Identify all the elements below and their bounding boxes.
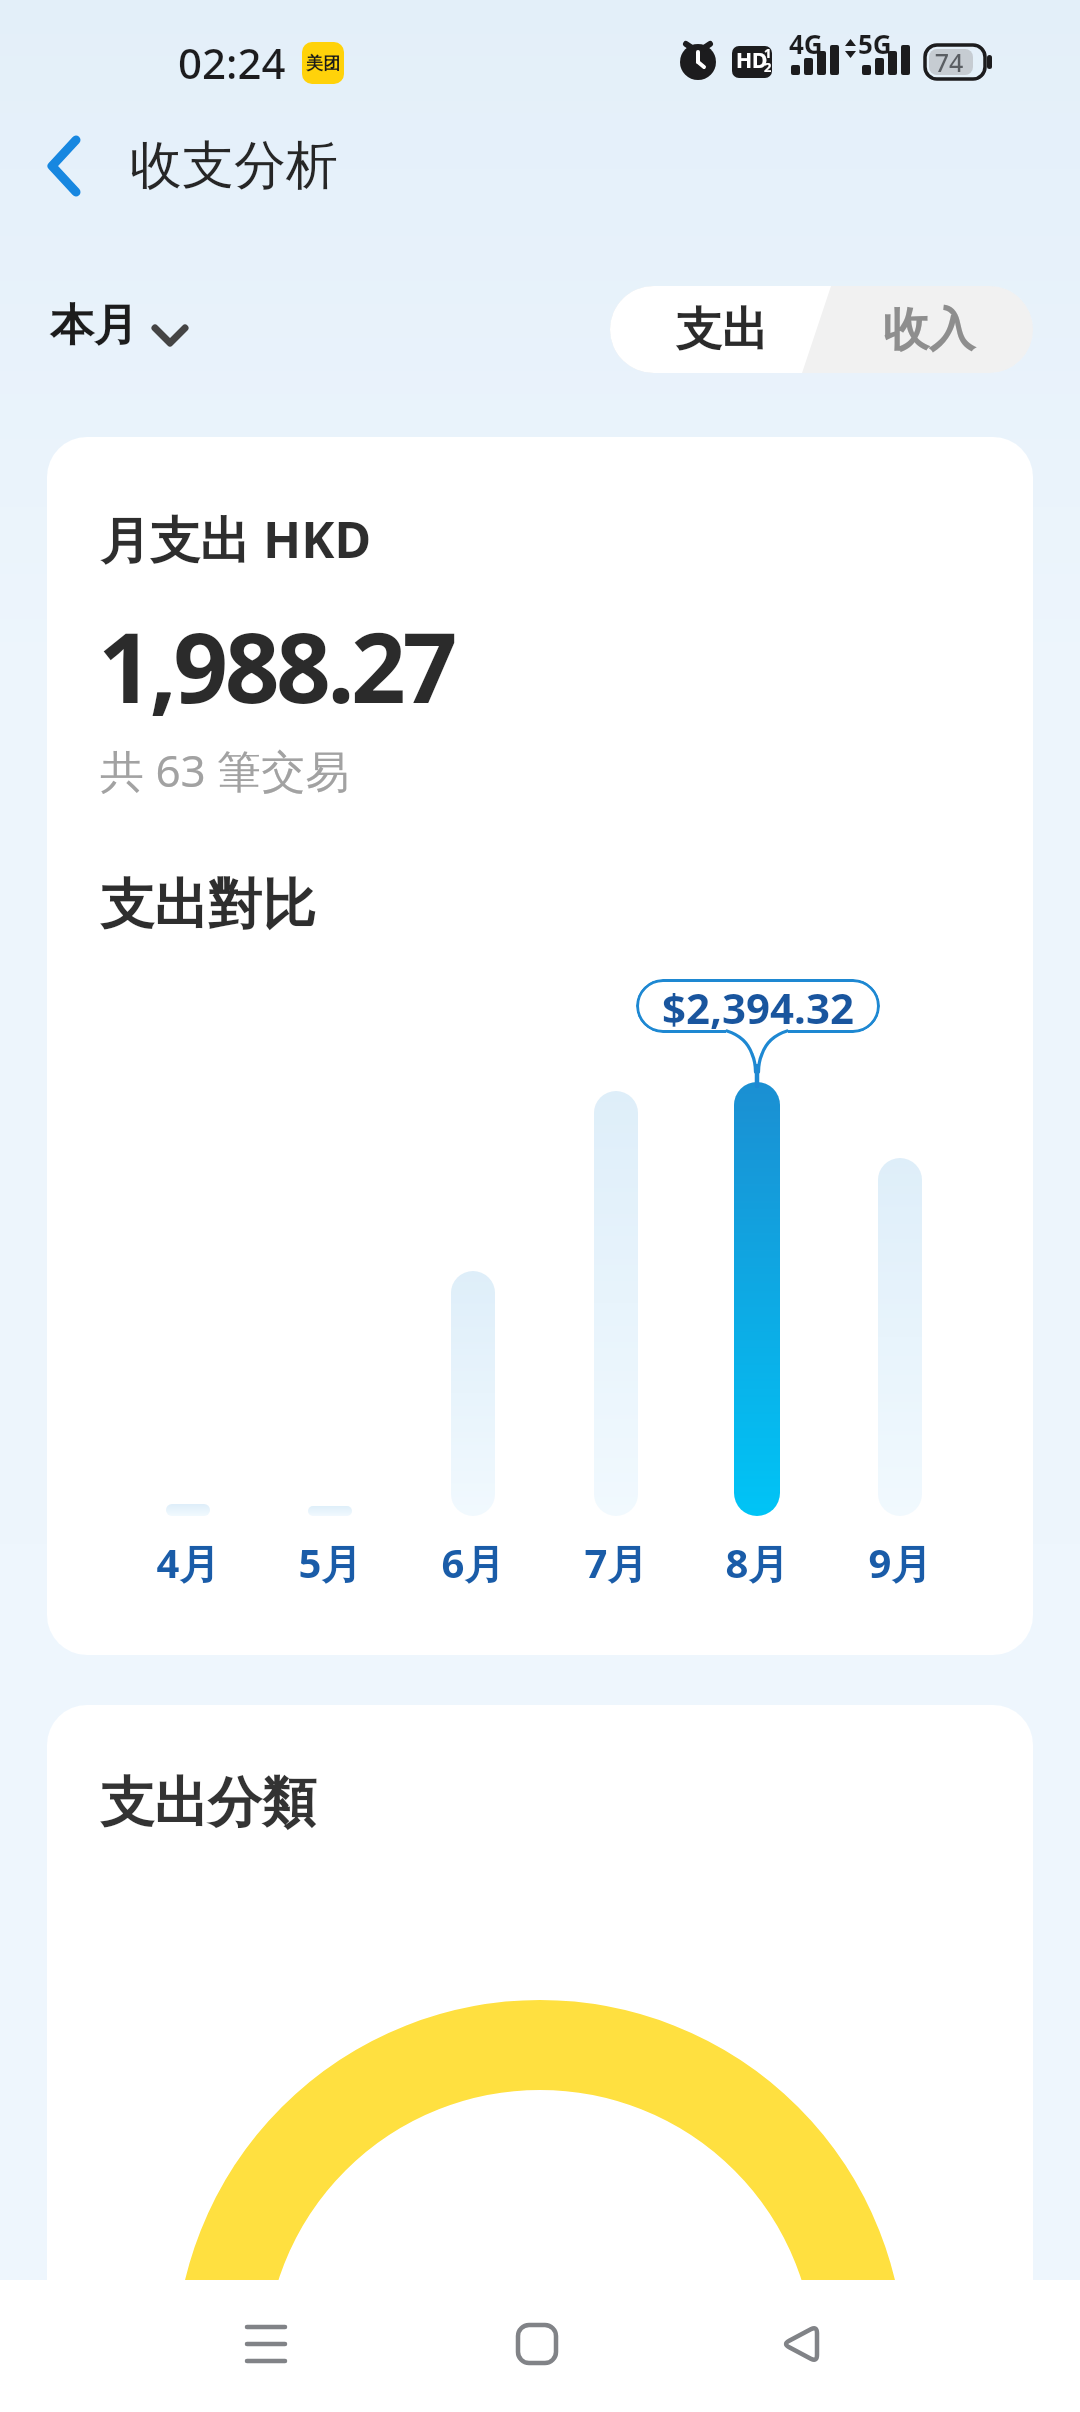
button[interactable] bbox=[230, 2308, 302, 2380]
staticText: 月支出 HKD bbox=[100, 505, 372, 573]
staticText: 02:24 bbox=[178, 34, 286, 91]
staticText: 8月 bbox=[697, 1535, 817, 1590]
staticText: HD bbox=[736, 46, 768, 75]
staticText: 支出 bbox=[676, 301, 768, 359]
staticText: 2 bbox=[764, 58, 772, 76]
staticText: 1,988.27 bbox=[98, 600, 454, 731]
staticText: 共 63 筆交易 bbox=[100, 740, 350, 800]
button[interactable]: 收入 bbox=[840, 286, 1033, 373]
button[interactable] bbox=[765, 2308, 837, 2380]
staticText: 4月 bbox=[128, 1535, 248, 1590]
staticText: 收入 bbox=[883, 301, 975, 359]
staticText: 1 bbox=[764, 44, 772, 62]
staticText: 5月 bbox=[270, 1535, 390, 1590]
staticText: 7月 bbox=[556, 1535, 676, 1590]
staticText: 支出對比 bbox=[100, 871, 316, 939]
staticText: 本月 bbox=[50, 298, 138, 353]
staticText: 74 bbox=[925, 45, 973, 79]
button[interactable]: 支出 bbox=[610, 286, 840, 373]
staticText: 支出分類 bbox=[100, 1769, 316, 1837]
staticText: 9月 bbox=[840, 1535, 960, 1590]
button[interactable]: 本月 bbox=[50, 298, 200, 368]
staticText: 收支分析 bbox=[130, 133, 338, 199]
button[interactable] bbox=[501, 2308, 573, 2380]
staticText: 6月 bbox=[413, 1535, 533, 1590]
staticText: 5G bbox=[858, 26, 892, 61]
staticText: $2,394.32 bbox=[662, 979, 854, 1033]
staticText: 4G bbox=[789, 26, 823, 61]
button[interactable] bbox=[34, 130, 104, 202]
staticText: 美团 bbox=[306, 53, 340, 74]
